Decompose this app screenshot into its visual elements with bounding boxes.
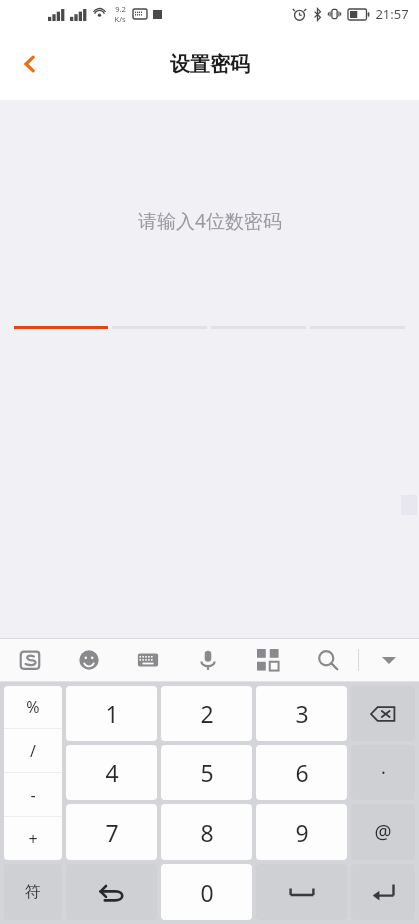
staticText: 0 [200,877,214,908]
button[interactable]: · [351,745,415,800]
button[interactable]: 5 [161,745,252,800]
staticText: % [26,696,40,718]
button[interactable]: @ [351,804,415,860]
button[interactable]: 9 [256,804,347,860]
button[interactable]: 空格 [256,864,347,920]
staticText: 7 [105,817,119,848]
button[interactable]: 输入法 [0,639,59,681]
staticText: 符 [25,882,41,902]
staticText: / [30,740,36,762]
staticText: 4 [105,757,119,788]
button[interactable]: - [4,773,62,816]
button[interactable]: 删除 [351,686,415,741]
button[interactable]: 2 [161,686,252,741]
button[interactable]: / [4,729,62,772]
staticText: @ [374,819,392,845]
button[interactable]: 表情 [59,639,118,681]
button[interactable]: 6 [256,745,347,800]
staticText: 9 [295,817,309,848]
staticText: 6 [295,757,309,788]
button[interactable]: 撤销 [66,864,157,920]
staticText: - [30,784,36,806]
button[interactable]: 键盘 [118,639,178,681]
staticText: + [28,828,38,850]
button[interactable]: 0 [161,864,252,920]
button[interactable]: 8 [161,804,252,860]
button[interactable]: 搜索 [298,639,358,681]
staticText: 5 [200,757,214,788]
staticText: 3 [295,698,309,729]
button[interactable]: + [4,817,62,860]
button[interactable]: 语音 [178,639,238,681]
staticText: · [381,760,386,785]
button[interactable]: 更多 [238,639,298,681]
staticText: 8 [200,817,214,848]
button[interactable]: 7 [66,804,157,860]
staticText: 21:57 [375,5,409,23]
button[interactable]: 1 [66,686,157,741]
button[interactable]: 回车 [351,864,415,920]
staticText: 2 [200,698,214,729]
button[interactable]: 3 [256,686,347,741]
staticText: 请输入4位数密码 [138,208,282,234]
button[interactable]: % [4,686,62,728]
staticText: K/s [114,14,126,24]
button[interactable]: 返回 [6,40,54,88]
staticText: 1 [105,698,119,729]
staticText: 9.2 [115,4,126,14]
button[interactable]: 符 [4,864,62,920]
button[interactable]: 4 [66,745,157,800]
button[interactable]: 收起键盘 [359,639,419,681]
staticText: 设置密码 [170,52,250,77]
